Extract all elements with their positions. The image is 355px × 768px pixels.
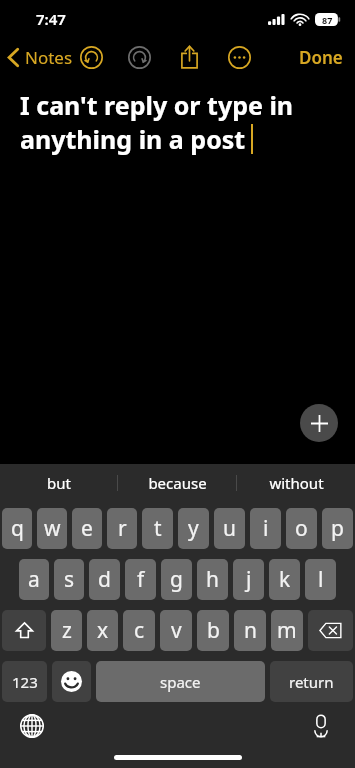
button[interactable]: k (269, 559, 300, 600)
staticText: I can't reply or type in (20, 88, 294, 122)
staticText: l (318, 565, 324, 594)
staticText: s (64, 565, 75, 594)
staticText: without (269, 473, 324, 493)
button[interactable]: Emoji (52, 661, 91, 702)
staticText: o (295, 514, 308, 543)
staticText: m (277, 616, 297, 645)
staticText: w (44, 514, 61, 543)
button[interactable]: h (197, 559, 228, 600)
staticText: k (279, 565, 291, 594)
staticText: d (98, 565, 111, 594)
button[interactable]: i (250, 508, 281, 549)
button[interactable]: Undo (76, 42, 106, 72)
staticText: Notes (25, 46, 73, 69)
staticText: y (188, 514, 199, 543)
staticText: i (263, 514, 269, 543)
staticText: t (154, 514, 162, 543)
button[interactable]: r (107, 508, 137, 549)
button[interactable]: Share (174, 42, 204, 72)
staticText: p (331, 514, 344, 543)
button[interactable]: return (270, 661, 353, 702)
button[interactable]: a (19, 559, 49, 600)
staticText: h (206, 565, 219, 594)
staticText: 87 (322, 14, 333, 26)
staticText: c (134, 616, 145, 645)
staticText: v (171, 616, 182, 645)
button[interactable]: Add attachment (300, 404, 338, 442)
staticText: r (118, 514, 127, 543)
staticText: e (81, 514, 93, 543)
button[interactable]: b (197, 610, 229, 651)
button[interactable]: l (305, 559, 336, 600)
button[interactable]: x (87, 610, 118, 651)
button[interactable]: Dictate (303, 708, 339, 744)
button[interactable]: Redo (124, 42, 154, 72)
staticText: z (62, 616, 72, 645)
button[interactable]: d (89, 559, 120, 600)
button[interactable]: p (322, 508, 353, 549)
staticText: a (28, 565, 40, 594)
staticText: j (246, 565, 252, 594)
button[interactable]: Backspace (308, 610, 353, 651)
button[interactable]: s (54, 559, 84, 600)
button[interactable]: o (286, 508, 317, 549)
staticText: because (148, 473, 207, 493)
button[interactable]: c (123, 610, 155, 651)
staticText: but (47, 473, 71, 493)
staticText: u (223, 514, 236, 543)
staticText: n (244, 616, 257, 645)
button[interactable]: e (72, 508, 102, 549)
button[interactable]: g (161, 559, 192, 600)
button[interactable]: u (214, 508, 245, 549)
button[interactable]: n (234, 610, 266, 651)
button[interactable]: because (118, 464, 236, 502)
button[interactable]: without (237, 464, 355, 502)
button[interactable]: q (2, 508, 32, 549)
staticText: anything in a post (20, 122, 246, 156)
staticText: 123 (12, 672, 38, 692)
button[interactable]: m (271, 610, 303, 651)
button[interactable]: More options (224, 42, 254, 72)
staticText: g (170, 565, 183, 594)
staticText: space (160, 672, 201, 692)
button[interactable]: j (233, 559, 264, 600)
button[interactable]: y (178, 508, 209, 549)
button[interactable]: t (142, 508, 173, 549)
button[interactable]: but (0, 464, 117, 502)
button[interactable]: Notes (0, 42, 81, 73)
button[interactable]: Switch keyboard language (14, 708, 50, 744)
staticText: q (11, 514, 24, 543)
button[interactable]: Done (287, 40, 355, 75)
button[interactable]: w (37, 508, 67, 549)
staticText: f (137, 565, 145, 594)
button[interactable]: v (160, 610, 192, 651)
button[interactable]: z (51, 610, 82, 651)
staticText: x (97, 616, 109, 645)
button[interactable]: Shift (2, 610, 46, 651)
staticText: b (207, 616, 220, 645)
staticText: 7:47 (36, 9, 66, 29)
button[interactable]: f (125, 559, 156, 600)
button[interactable]: space (96, 661, 265, 702)
button[interactable]: 123 (2, 661, 47, 702)
staticText: return (289, 672, 334, 692)
